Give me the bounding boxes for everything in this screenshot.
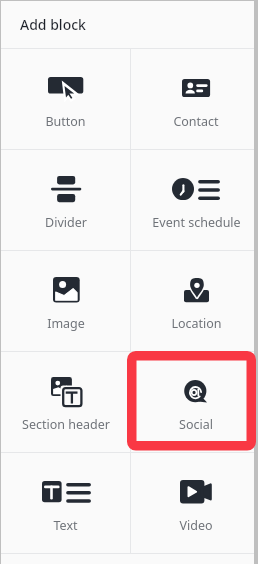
button[interactable]: Section header: [1, 352, 130, 452]
staticText: Add block: [20, 15, 86, 34]
button[interactable]: Contact: [131, 49, 258, 149]
button[interactable]: Location: [131, 251, 258, 351]
staticText: Text: [53, 517, 78, 534]
staticText: Image: [47, 315, 85, 332]
button[interactable]: Divider: [1, 150, 130, 250]
button[interactable]: Social: [131, 352, 258, 452]
staticText: Social: [179, 416, 213, 433]
staticText: Video: [179, 517, 213, 534]
button[interactable]: Video: [131, 453, 258, 553]
staticText: Button: [45, 113, 86, 130]
staticText: Section header: [22, 416, 110, 433]
staticText: Location: [171, 315, 222, 332]
button[interactable]: Text: [1, 453, 130, 553]
staticText: Event schedule: [152, 214, 241, 231]
staticText: Contact: [173, 113, 219, 130]
staticText: Divider: [45, 214, 87, 231]
button[interactable]: Image: [1, 251, 130, 351]
button[interactable]: Button: [1, 49, 130, 149]
button[interactable]: Event schedule: [131, 150, 258, 250]
